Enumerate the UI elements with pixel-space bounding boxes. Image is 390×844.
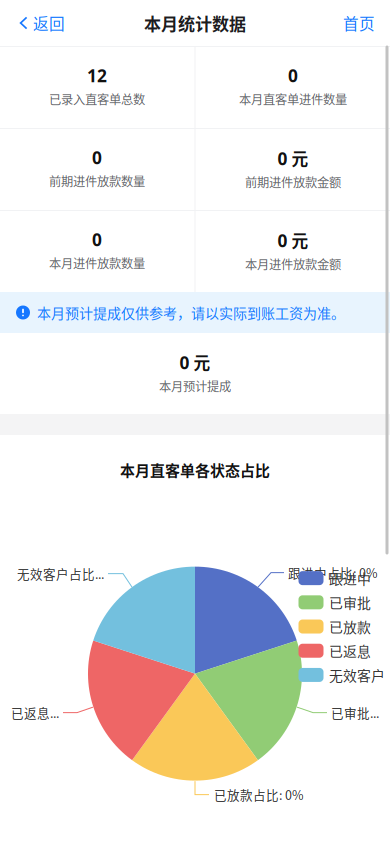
- staticText: 0: [277, 229, 287, 252]
- staticText: 本月直客单各状态占比: [120, 459, 270, 481]
- staticText: 已审批: [329, 592, 371, 612]
- staticText: 前期进件放款数量: [49, 172, 145, 190]
- staticText: 跟进中占比: 0%: [288, 563, 378, 582]
- staticText: 已放款占比: 0%: [214, 785, 304, 804]
- staticText: 无效客户占比...: [17, 564, 104, 583]
- staticText: 已返息: [329, 641, 371, 661]
- staticText: 首页: [343, 12, 375, 34]
- staticText: 元: [291, 146, 308, 170]
- staticText: 12: [87, 64, 107, 87]
- staticText: 返回: [33, 12, 65, 34]
- staticText: 本月直客单进件数量: [239, 90, 347, 108]
- button[interactable]: 首页: [326, 0, 390, 46]
- staticText: 0: [92, 146, 102, 169]
- staticText: 跟进中: [329, 568, 371, 588]
- staticText: 0: [179, 351, 189, 374]
- staticText: 已录入直客单总数: [49, 90, 145, 108]
- staticText: 0: [92, 228, 102, 251]
- staticText: 本月预计提成: [159, 377, 231, 395]
- staticText: 0: [277, 147, 287, 170]
- staticText: 元: [193, 350, 210, 374]
- staticText: 前期进件放款金额: [245, 173, 341, 191]
- button[interactable]: 返回: [0, 0, 77, 46]
- staticText: 0: [288, 64, 298, 87]
- staticText: 无效客户: [329, 665, 385, 685]
- staticText: 本月预计提成仅供参考，请以实际到账工资为准。: [37, 302, 345, 323]
- staticText: 已审批...: [331, 703, 379, 722]
- staticText: 已返息...: [11, 703, 59, 722]
- staticText: 本月进件放款金额: [245, 255, 341, 273]
- staticText: 已放款: [329, 616, 371, 637]
- staticText: 元: [291, 228, 308, 252]
- staticText: 本月进件放款数量: [49, 254, 145, 272]
- staticText: 本月统计数据: [144, 11, 246, 35]
